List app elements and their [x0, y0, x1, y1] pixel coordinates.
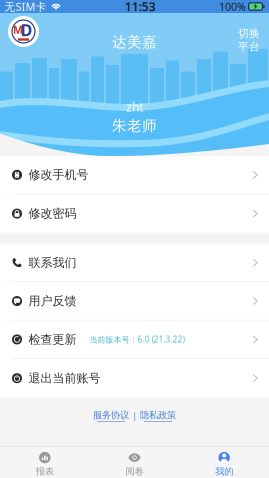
staticText: D — [20, 19, 32, 41]
staticText: 达美嘉 — [112, 33, 157, 51]
button[interactable]: 检查更新 — [0, 321, 269, 359]
button[interactable]: 用户反馈 — [0, 282, 269, 321]
staticText: 我的 — [215, 466, 233, 477]
staticText: 平台 — [238, 40, 260, 53]
button[interactable]: 隐私政策 — [140, 409, 176, 422]
staticText: 用户反馈 — [28, 294, 76, 308]
staticText: zht — [126, 99, 143, 115]
button[interactable]: 联系我们 — [0, 244, 269, 282]
staticText: 阅卷 — [125, 466, 143, 477]
button[interactable]: 我的 — [179, 447, 269, 478]
button[interactable]: 修改手机号 — [0, 156, 269, 194]
staticText: 朱老师 — [112, 117, 157, 135]
staticText: 100% — [219, 0, 246, 14]
button[interactable]: 服务协议 — [93, 409, 129, 422]
staticText: 修改密码 — [28, 206, 76, 221]
staticText: 检查更新 — [28, 332, 76, 347]
button[interactable]: 退出当前账号 — [0, 359, 269, 397]
staticText: 退出当前账号 — [28, 371, 100, 385]
staticText: 切换 — [238, 27, 260, 40]
button[interactable]: 修改密码 — [0, 194, 269, 233]
staticText: 无SIM卡 — [4, 0, 46, 14]
staticText: 联系我们 — [28, 255, 76, 270]
staticText: 当前版本号：6.0 (21.3.22) — [89, 334, 184, 345]
staticText: 报表 — [36, 466, 54, 477]
staticText: 隐私政策 — [140, 409, 176, 421]
staticText: M — [13, 22, 23, 37]
button[interactable]: 阅卷 — [90, 447, 179, 478]
button[interactable]: 切换 — [236, 25, 262, 55]
staticText: 11:53 — [125, 0, 156, 14]
button[interactable]: 报表 — [0, 447, 90, 478]
staticText: 修改手机号 — [28, 167, 88, 182]
staticText: | — [132, 409, 137, 422]
staticText: 服务协议 — [93, 409, 129, 421]
